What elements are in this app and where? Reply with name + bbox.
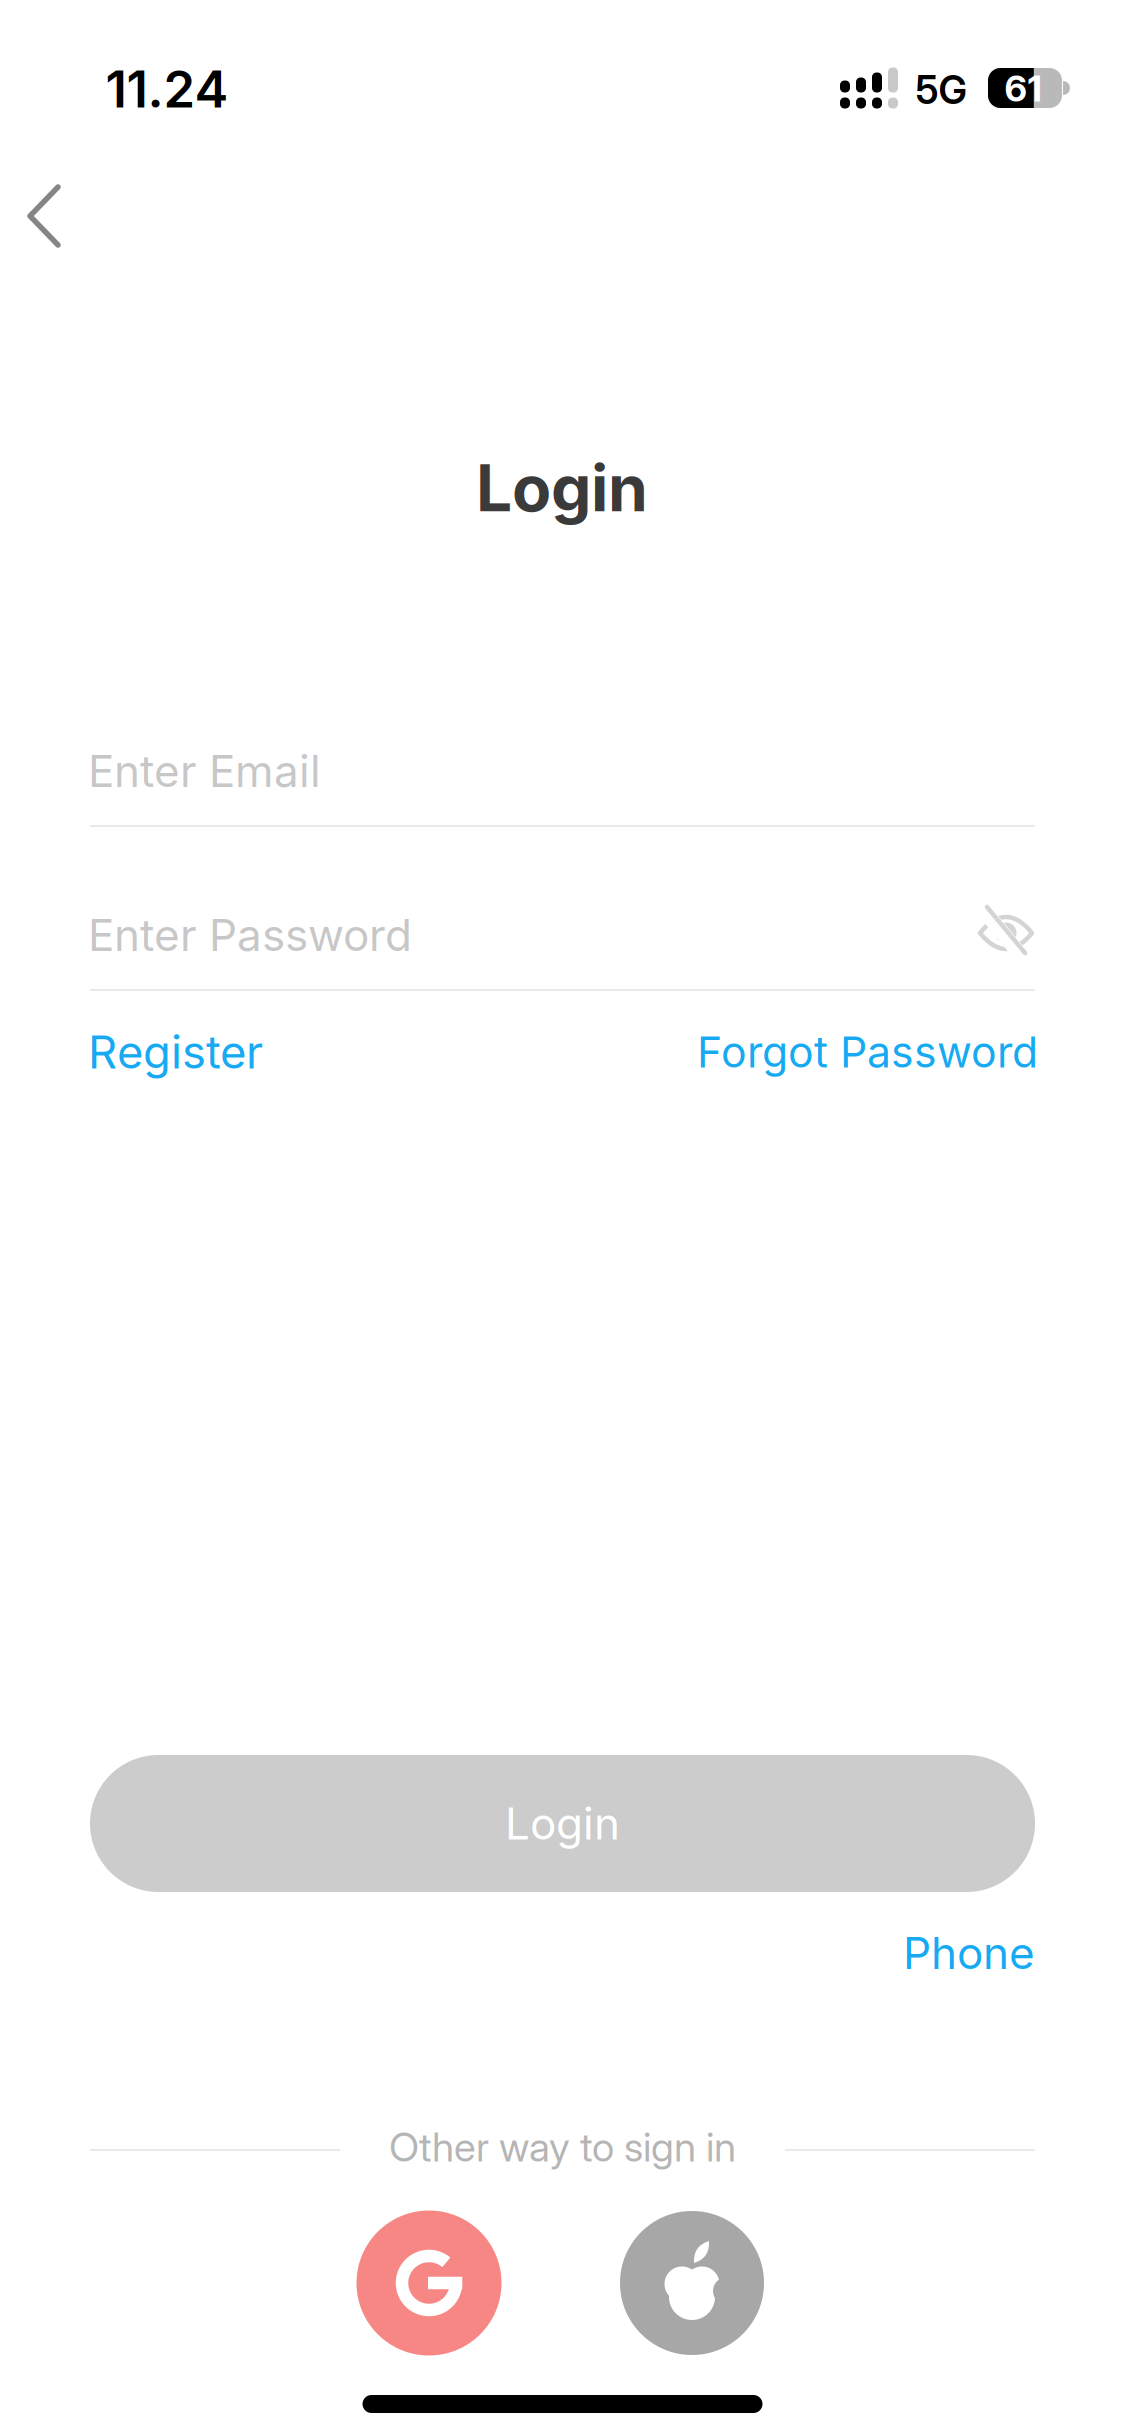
button[interactable] bbox=[2, 174, 86, 258]
staticText: 61 bbox=[1004, 67, 1041, 110]
staticText: Enter Email bbox=[88, 744, 321, 798]
staticText: Phone bbox=[903, 1926, 1035, 1980]
staticText: 5G bbox=[915, 67, 966, 113]
staticText: Forgot Password bbox=[697, 1026, 1038, 1078]
staticText: Login bbox=[505, 1797, 620, 1850]
staticText: Enter Password bbox=[88, 908, 412, 962]
staticText: Register bbox=[88, 1025, 263, 1079]
staticText: Other way to sign in bbox=[389, 2123, 736, 2171]
button[interactable]: Forgot Password bbox=[697, 1026, 1038, 1078]
button[interactable] bbox=[620, 2211, 764, 2355]
button[interactable]: Phone bbox=[903, 1926, 1035, 1980]
button[interactable]: Register bbox=[88, 1025, 263, 1079]
staticText: 11.24 bbox=[105, 58, 228, 120]
staticText: Login bbox=[476, 449, 648, 527]
button[interactable] bbox=[356, 2210, 501, 2355]
button[interactable]: Login bbox=[90, 1755, 1035, 1892]
button[interactable] bbox=[977, 904, 1035, 962]
